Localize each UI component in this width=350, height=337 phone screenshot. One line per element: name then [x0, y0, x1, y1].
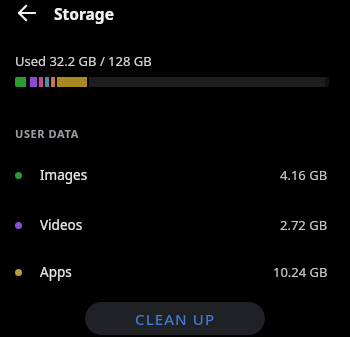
button[interactable]: Apps [0, 247, 350, 297]
staticText: 10.24 GB [273, 263, 328, 281]
button[interactable]: CLEAN UP [85, 302, 265, 335]
staticText: 2.72 GB [280, 216, 328, 234]
button[interactable]: Images [0, 150, 350, 200]
staticText: Storage [54, 3, 114, 24]
button[interactable] [14, 0, 40, 26]
staticText: CLEAN UP [135, 309, 216, 329]
staticText: USER DATA [15, 126, 79, 141]
staticText: Videos [40, 216, 83, 234]
staticText: 4.16 GB [280, 166, 328, 184]
staticText: Used 32.2 GB / 128 GB [15, 52, 152, 70]
button[interactable]: Videos [0, 200, 350, 250]
staticText: Images [40, 166, 88, 184]
staticText: Apps [40, 263, 72, 281]
